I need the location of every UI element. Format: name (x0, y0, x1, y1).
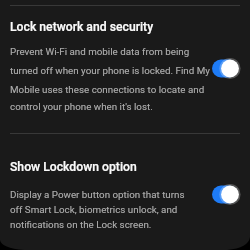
staticText: notifications on the Lock screen. (10, 219, 152, 230)
staticText: Mobile uses these connections to locate … (10, 84, 205, 95)
button[interactable] (207, 182, 241, 207)
staticText: control your phone when it's lost. (10, 101, 153, 112)
staticText: off Smart Lock, biometrics unlock, and (10, 204, 178, 215)
staticText: turned off when your phone is locked. Fi… (10, 65, 210, 76)
button[interactable]: Lock network and security (0, 5, 250, 133)
staticText: Lock network and security (10, 20, 154, 34)
button[interactable] (207, 56, 241, 81)
button[interactable]: Show Lockdown option (0, 134, 250, 234)
staticText: Show Lockdown option (10, 160, 137, 174)
staticText: Prevent Wi-Fi and mobile data from being (10, 46, 190, 57)
staticText: Display a Power button option that turns (10, 189, 185, 200)
